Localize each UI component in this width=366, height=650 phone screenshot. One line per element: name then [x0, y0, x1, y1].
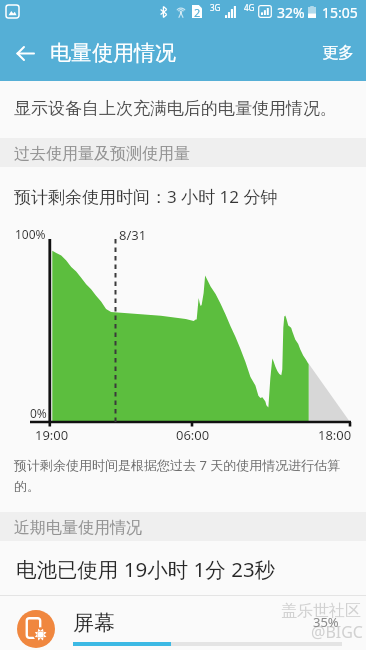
staticText: 32% — [277, 3, 305, 22]
staticText: 100% — [15, 226, 46, 242]
staticText: 显示设备自上次充满电后的电量使用情况。 — [14, 98, 337, 119]
staticText: 2 — [194, 5, 201, 18]
staticText: 过去使用量及预测使用量 — [14, 144, 190, 164]
staticText: 预计剩余使用时间是根据您过去 7 天的使用情况进行估算 的。 — [14, 456, 341, 495]
button[interactable]: 屏幕 — [0, 596, 366, 650]
staticText: 电池已使用 19小时 1分 23秒 — [16, 555, 276, 583]
button[interactable]: Back — [3, 31, 47, 75]
staticText: 18:00 — [318, 426, 352, 444]
staticText: 4G — [244, 2, 255, 13]
staticText: 35% — [313, 613, 339, 631]
staticText: 8/31 — [119, 226, 147, 244]
staticText: 更多 — [322, 43, 354, 63]
staticText: @BIGC — [311, 621, 363, 643]
staticText: 15:05 — [322, 3, 358, 22]
staticText: 0% — [30, 405, 47, 421]
staticText: 近期电量使用情况 — [14, 518, 142, 538]
staticText: 屏幕 — [73, 610, 115, 636]
staticText: 电量使用情况 — [50, 40, 176, 66]
staticText: 06:00 — [176, 426, 210, 444]
button[interactable]: 更多 — [310, 29, 366, 77]
staticText: 盖乐世社区 — [281, 601, 361, 621]
staticText: 预计剩余使用时间：3 小时 12 分钟 — [14, 185, 278, 208]
staticText: 19:00 — [35, 426, 69, 444]
staticText: 3G — [210, 2, 221, 13]
